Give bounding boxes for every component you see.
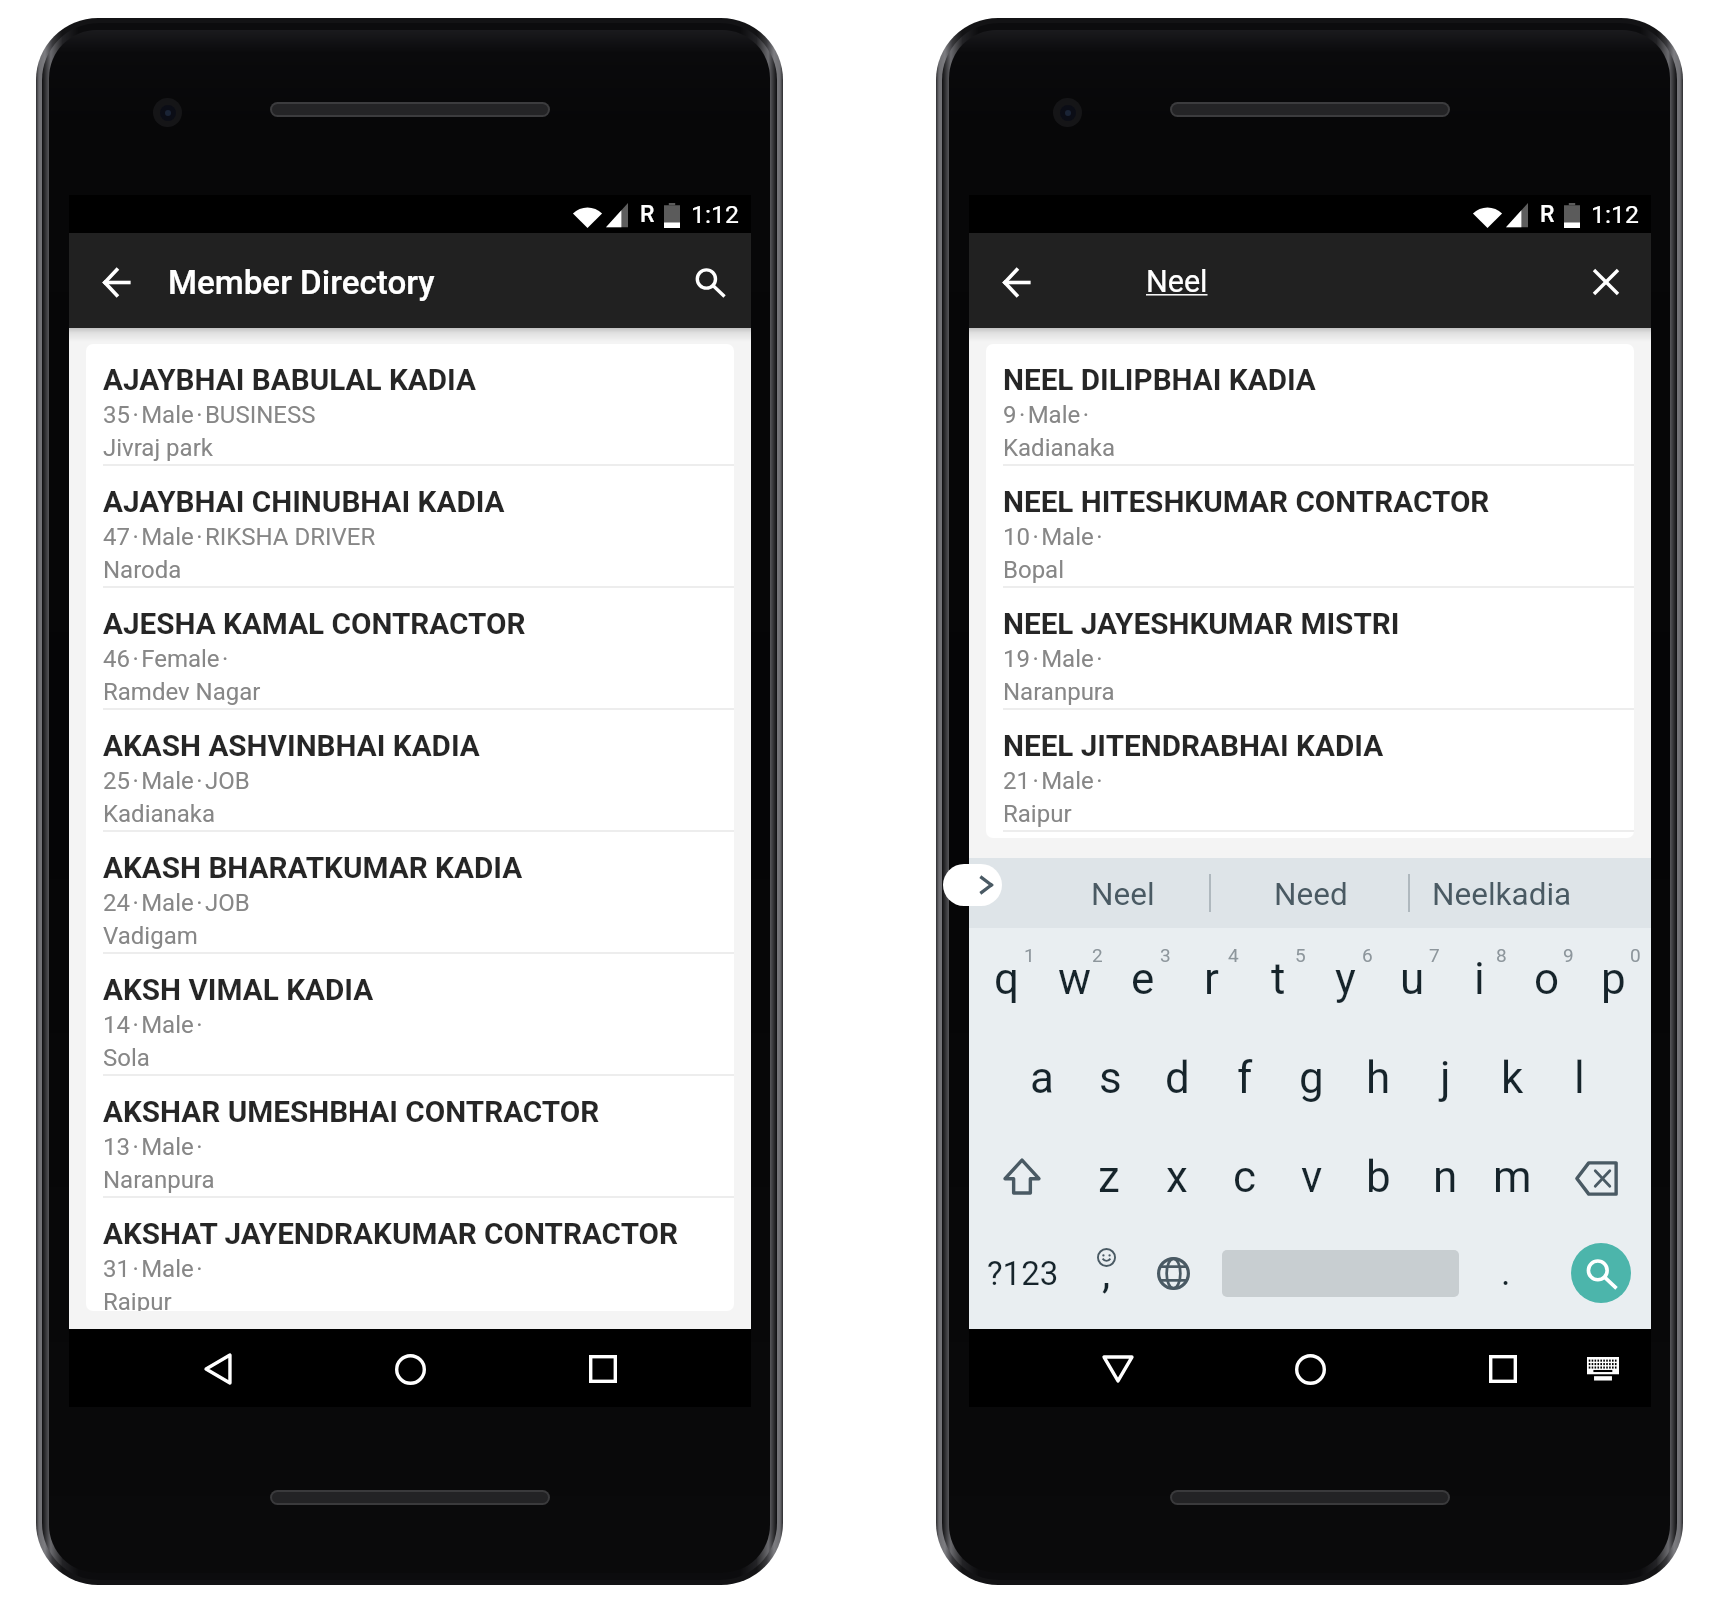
staticText: 24 · Male · JOB: [103, 889, 250, 917]
button[interactable]: Search: [678, 250, 742, 314]
staticText: Jivraj park: [103, 434, 213, 462]
button[interactable]: Change language: [1139, 1228, 1207, 1322]
staticText: c: [1233, 1151, 1257, 1203]
staticText: 1:12: [1591, 200, 1639, 229]
staticText: NEEL JAYESHKUMAR MISTRI: [1003, 606, 1400, 641]
button[interactable]: Recents: [567, 1333, 639, 1405]
button[interactable]: Emoji: [1073, 1228, 1139, 1322]
button[interactable]: Neel: [1091, 858, 1155, 928]
staticText: 8: [1496, 944, 1507, 966]
button[interactable]: j: [1412, 1030, 1479, 1129]
button[interactable]: More suggestions: [943, 864, 1002, 906]
button[interactable]: 5: [1245, 931, 1312, 1030]
button[interactable]: 0: [1580, 931, 1647, 1030]
button[interactable]: AKSHAT JAYENDRAKUMAR CONTRACTOR: [86, 1198, 734, 1311]
button[interactable]: Search: [1571, 1243, 1631, 1303]
button[interactable]: Clear search: [1574, 250, 1638, 314]
button[interactable]: n: [1412, 1129, 1479, 1228]
staticText: x: [1166, 1151, 1188, 1203]
button[interactable]: ?123: [973, 1228, 1073, 1322]
button[interactable]: NEEL HITESHKUMAR CONTRACTOR: [986, 466, 1634, 588]
staticText: Raipur: [1003, 800, 1072, 828]
button[interactable]: Back: [1082, 1333, 1154, 1405]
staticText: Neelkadia: [1432, 876, 1572, 913]
staticText: e: [1131, 953, 1155, 1005]
button[interactable]: 3: [1109, 931, 1177, 1030]
staticText: NEEL DILIPBHAI KADIA: [1003, 362, 1316, 397]
button[interactable]: Recents: [1467, 1333, 1539, 1405]
button[interactable]: b: [1345, 1129, 1412, 1228]
button[interactable]: 1: [973, 931, 1041, 1030]
button[interactable]: k: [1479, 1030, 1546, 1129]
staticText: 9 · Male ·: [1003, 401, 1089, 429]
button[interactable]: NEEL JITENDRABHAI KADIA: [986, 710, 1634, 832]
button[interactable]: d: [1144, 1030, 1211, 1129]
button[interactable]: 9: [1513, 931, 1580, 1030]
staticText: 14 · Male ·: [103, 1011, 203, 1039]
button[interactable]: Space: [1207, 1228, 1473, 1322]
staticText: 5: [1295, 944, 1306, 966]
button[interactable]: h: [1345, 1030, 1412, 1129]
button[interactable]: AJAYBHAI CHINUBHAI KADIA: [86, 466, 734, 588]
button[interactable]: Hide keyboard: [1573, 1339, 1633, 1399]
staticText: 9: [1563, 944, 1574, 966]
staticText: m: [1493, 1151, 1532, 1203]
button[interactable]: Back: [182, 1333, 254, 1405]
button[interactable]: Back: [85, 250, 149, 314]
staticText: p: [1601, 953, 1626, 1005]
button[interactable]: .: [1473, 1228, 1538, 1322]
button[interactable]: 4: [1177, 931, 1245, 1030]
button[interactable]: c: [1211, 1129, 1278, 1228]
button[interactable]: Backspace: [1546, 1129, 1647, 1228]
staticText: 1:12: [691, 200, 739, 229]
staticText: 1: [1024, 944, 1035, 966]
staticText: 35 · Male · BUSINESS: [103, 401, 316, 429]
button[interactable]: x: [1143, 1129, 1211, 1228]
staticText: NEEL JITENDRABHAI KADIA: [1003, 728, 1384, 763]
staticText: 10 · Male ·: [1003, 523, 1103, 551]
button[interactable]: 7: [1379, 931, 1446, 1030]
staticText: b: [1366, 1151, 1391, 1203]
staticText: k: [1501, 1052, 1524, 1104]
staticText: R: [640, 201, 655, 228]
button[interactable]: NEEL DILIPBHAI KADIA: [986, 344, 1634, 466]
staticText: a: [1030, 1052, 1054, 1104]
button[interactable]: 6: [1312, 931, 1379, 1030]
staticText: AJESHA KAMAL CONTRACTOR: [103, 606, 526, 641]
button[interactable]: l: [1546, 1030, 1613, 1129]
staticText: y: [1335, 953, 1356, 1005]
staticText: 0: [1630, 944, 1641, 966]
button[interactable]: AKASH ASHVINBHAI KADIA: [86, 710, 734, 832]
button[interactable]: g: [1278, 1030, 1345, 1129]
staticText: AKASH ASHVINBHAI KADIA: [103, 728, 480, 763]
button[interactable]: Home: [374, 1333, 446, 1405]
button[interactable]: Neel: [1069, 233, 1539, 328]
button[interactable]: Home: [1274, 1333, 1346, 1405]
staticText: l: [1574, 1052, 1585, 1104]
staticText: Kadianaka: [103, 800, 216, 828]
staticText: 25 · Male · JOB: [103, 767, 250, 795]
button[interactable]: Need: [1274, 858, 1348, 928]
button[interactable]: AJAYBHAI BABULAL KADIA: [86, 344, 734, 466]
button[interactable]: z: [1075, 1129, 1143, 1228]
button[interactable]: m: [1479, 1129, 1546, 1228]
staticText: AKASH BHARATKUMAR KADIA: [103, 850, 523, 885]
staticText: 31 · Male ·: [103, 1255, 203, 1283]
button[interactable]: f: [1211, 1030, 1278, 1129]
button[interactable]: v: [1278, 1129, 1345, 1228]
button[interactable]: 2: [1041, 931, 1109, 1030]
button[interactable]: AJESHA KAMAL CONTRACTOR: [86, 588, 734, 710]
button[interactable]: Back: [985, 250, 1049, 314]
button[interactable]: NEEL JAYESHKUMAR MISTRI: [986, 588, 1634, 710]
button[interactable]: s: [1076, 1030, 1144, 1129]
button[interactable]: 8: [1446, 931, 1513, 1030]
staticText: Naranpura: [103, 1166, 215, 1194]
button[interactable]: Shift: [973, 1129, 1075, 1228]
staticText: h: [1366, 1052, 1391, 1104]
button[interactable]: AKSH VIMAL KADIA: [86, 954, 734, 1076]
button[interactable]: Neelkadia: [1432, 858, 1572, 928]
button[interactable]: AKSHAR UMESHBHAI CONTRACTOR: [86, 1076, 734, 1198]
button[interactable]: AKASH BHARATKUMAR KADIA: [86, 832, 734, 954]
staticText: .: [1501, 1252, 1511, 1294]
button[interactable]: a: [1008, 1030, 1076, 1129]
